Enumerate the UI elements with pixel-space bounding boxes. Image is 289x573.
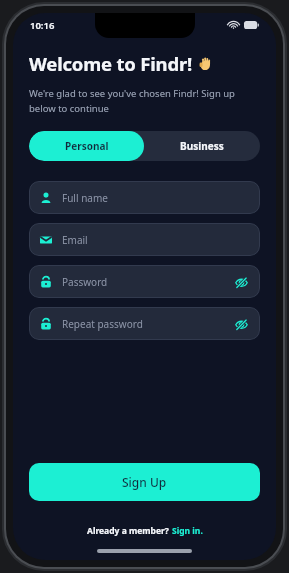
button[interactable]: Business <box>144 131 260 161</box>
staticText: Sign in. <box>172 525 203 537</box>
staticText: We're glad to see you've chosen Findr! S… <box>29 87 235 115</box>
staticText: 10:16 <box>30 19 55 32</box>
button[interactable]: Show password <box>233 316 249 332</box>
staticText: Business <box>180 139 224 153</box>
button[interactable]: Email <box>29 223 260 256</box>
staticText: Email <box>62 233 88 247</box>
button[interactable]: Show password <box>233 274 249 290</box>
staticText: Sign Up <box>122 474 167 490</box>
staticText: Welcome to Findr! <box>29 51 192 76</box>
button[interactable]: Sign Up <box>29 463 260 501</box>
staticText: Already a member? <box>87 525 172 537</box>
button[interactable]: Full name <box>29 181 260 214</box>
button[interactable]: Password <box>29 265 260 298</box>
staticText: Repeat password <box>62 317 143 331</box>
button[interactable]: Repeat password <box>29 307 260 340</box>
staticText: Personal <box>65 139 109 153</box>
button[interactable]: Sign in. <box>172 525 203 537</box>
staticText: Full name <box>62 191 108 205</box>
button[interactable]: Personal <box>29 131 144 161</box>
staticText: Password <box>62 275 108 289</box>
